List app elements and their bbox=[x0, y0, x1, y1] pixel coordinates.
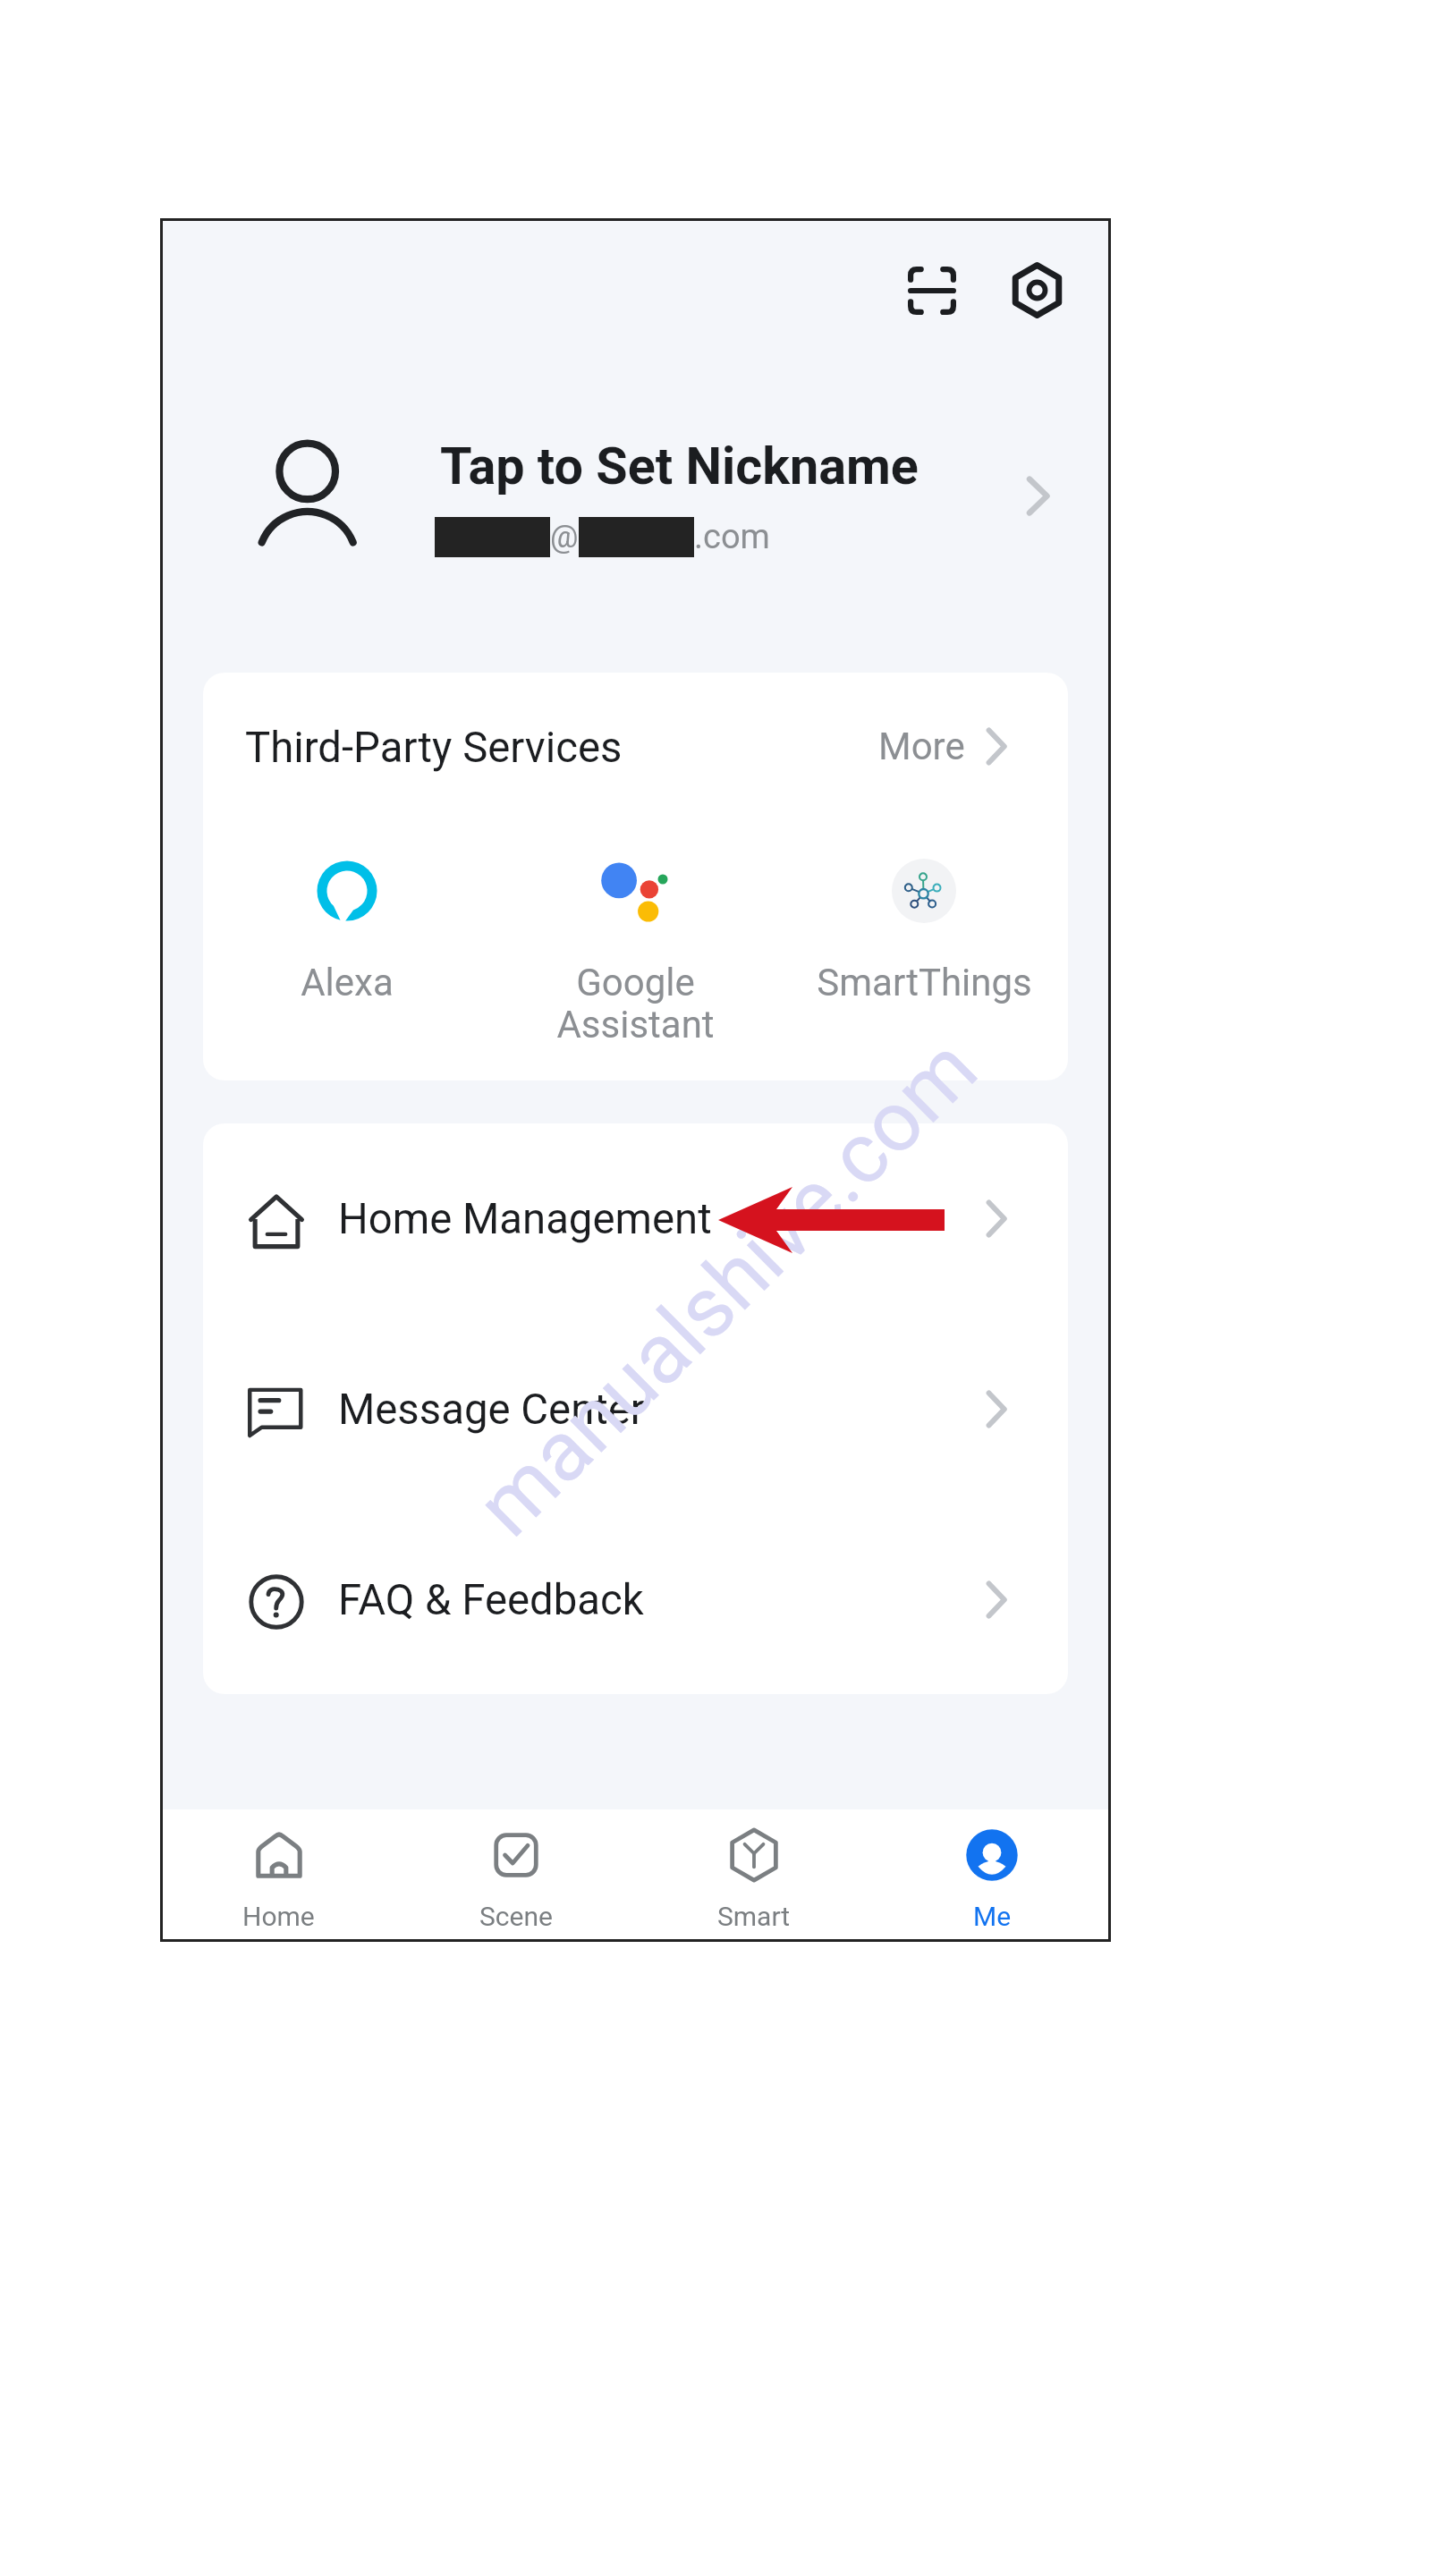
staticText: Google Assistant bbox=[556, 961, 715, 1046]
staticText: Scene bbox=[479, 1901, 553, 1932]
staticText: Tap to Set Nickname bbox=[440, 436, 919, 496]
button[interactable]: Google Assistant bbox=[491, 816, 779, 1030]
button[interactable]: Me bbox=[873, 1809, 1111, 1939]
staticText: More bbox=[878, 724, 965, 768]
staticText: .com bbox=[694, 517, 770, 557]
button[interactable]: Settings bbox=[996, 250, 1078, 331]
staticText: Me bbox=[973, 1901, 1012, 1932]
button[interactable]: SmartThings bbox=[780, 816, 1068, 1030]
staticText: manualshive.com bbox=[458, 1019, 997, 1555]
button[interactable]: Smart bbox=[635, 1809, 873, 1939]
button[interactable]: More bbox=[862, 706, 1065, 786]
button[interactable]: Home bbox=[160, 1809, 397, 1939]
button[interactable]: Message Center bbox=[203, 1314, 1068, 1504]
staticText: Home bbox=[242, 1901, 315, 1932]
button[interactable]: Tap to Set Nickname bbox=[160, 397, 1111, 621]
staticText: Message Center bbox=[338, 1385, 645, 1434]
staticText: Home Management bbox=[338, 1194, 712, 1243]
button[interactable]: FAQ & Feedback bbox=[203, 1504, 1068, 1694]
staticText: Alexa bbox=[301, 961, 394, 1004]
staticText: Third-Party Services bbox=[245, 723, 623, 772]
staticText: SmartThings bbox=[817, 961, 1032, 1004]
staticText: Smart bbox=[717, 1901, 791, 1932]
button[interactable]: Home Management bbox=[203, 1123, 1068, 1314]
staticText: @ bbox=[550, 519, 579, 555]
button[interactable]: Alexa bbox=[203, 816, 491, 1030]
button[interactable]: Scene bbox=[397, 1809, 635, 1939]
staticText: FAQ & Feedback bbox=[338, 1575, 644, 1624]
button[interactable]: Scan QR code bbox=[891, 250, 972, 331]
